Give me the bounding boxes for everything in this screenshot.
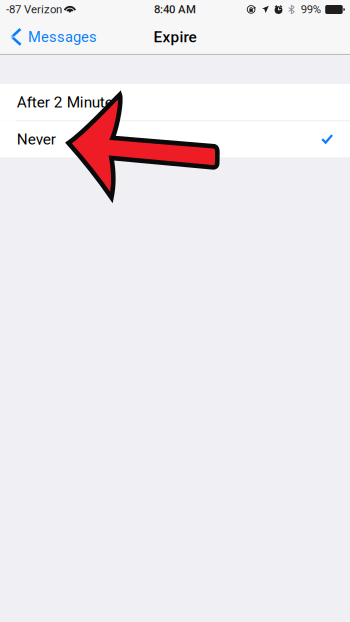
staticText: Never [17,130,56,148]
staticText: 99% [301,3,321,16]
button[interactable]: Never [0,121,350,157]
button[interactable]: Messages [0,19,107,54]
staticText: After 2 Minutes [17,93,121,111]
button[interactable]: After 2 Minutes [0,84,350,121]
staticText: Expire [153,28,196,46]
staticText: -87 Verizon [6,3,62,16]
staticText: 8:40 AM [154,3,196,16]
staticText: Messages [28,28,97,46]
